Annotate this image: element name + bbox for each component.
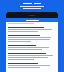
button[interactable] [6, 62, 58, 70]
button[interactable]: App bar [6, 18, 58, 22]
button[interactable] [6, 26, 58, 34]
button[interactable] [6, 52, 58, 62]
button[interactable] [6, 44, 58, 52]
button[interactable] [0, 3, 64, 4]
button[interactable] [6, 34, 58, 44]
